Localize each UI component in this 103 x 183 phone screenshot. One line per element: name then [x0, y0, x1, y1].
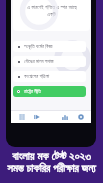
staticText: রাষ্ট্রের নীতি — [24, 88, 42, 95]
staticText: সংস্কৃতি ধর্মের বিষয় — [24, 43, 53, 50]
staticText: বাংলায় মক টেস্ট ২০২৩ — [12, 148, 91, 163]
staticText: সমস্ত চাকরির পরীক্ষার জন্য — [7, 160, 96, 175]
button[interactable]: বৌদ্ধের মানব সমাজ — [13, 56, 86, 67]
button[interactable]: সংস্কৃতি ধর্মের বিষয় — [13, 41, 86, 52]
button[interactable]: Settings — [74, 110, 87, 123]
staticText: বৌদ্ধের মানব সমাজ — [24, 58, 54, 65]
staticText: একটি — [47, 12, 56, 17]
button[interactable]: রাষ্ট্রের নীতি — [13, 86, 86, 97]
staticText: এ কারণেই গণিতে এ স্পর আছে — [27, 3, 77, 10]
button[interactable]: কংগ্রেসের পত্রিকা — [13, 71, 86, 82]
button[interactable]: Next — [30, 110, 43, 123]
button[interactable]: Categories — [15, 110, 28, 123]
staticText: কংগ্রেসের পত্রিকা — [24, 73, 50, 80]
button[interactable]: Results — [58, 110, 71, 123]
